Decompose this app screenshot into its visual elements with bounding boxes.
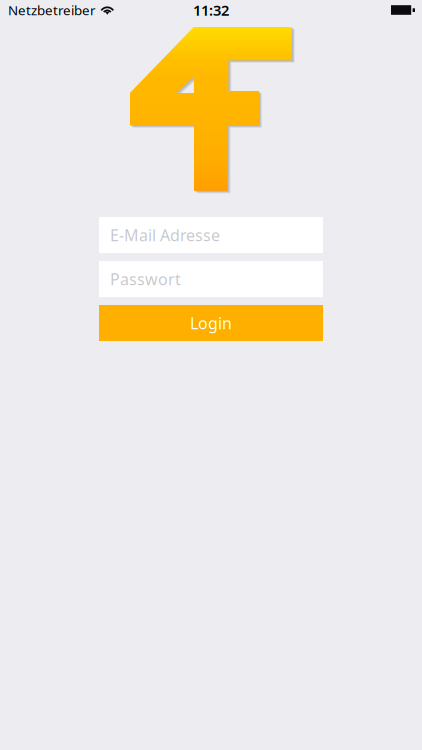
button[interactable]: Login	[99, 305, 323, 341]
staticText: 11:32	[193, 0, 229, 20]
button[interactable]: E-Mail Adresse	[99, 217, 323, 253]
staticText: Passwort	[110, 268, 181, 290]
staticText: Login	[190, 312, 232, 334]
staticText: Netzbetreiber	[8, 1, 96, 19]
staticText: E-Mail Adresse	[110, 224, 220, 246]
button[interactable]: Passwort	[99, 261, 323, 297]
